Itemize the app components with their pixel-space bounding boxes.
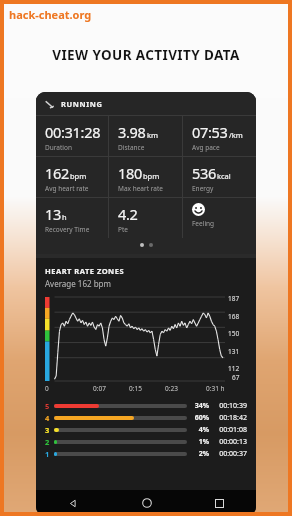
staticText: RUNNING xyxy=(61,99,103,109)
staticText: hack-cheat.org xyxy=(9,7,92,22)
staticText: 2 xyxy=(45,437,54,447)
staticText: 150 xyxy=(228,329,247,338)
button[interactable]: 2 xyxy=(45,436,247,448)
staticText: 4 xyxy=(45,413,54,423)
staticText: 536 xyxy=(192,163,216,183)
staticText: Distance xyxy=(118,143,145,152)
staticText: 00:00:37 xyxy=(213,449,247,459)
button[interactable]: Back xyxy=(36,490,110,516)
staticText: Feeling xyxy=(192,219,215,228)
staticText: 3 xyxy=(45,425,54,435)
staticText: Energy xyxy=(192,184,214,193)
staticText: 5 xyxy=(45,401,54,411)
staticText: 112 xyxy=(228,364,247,373)
staticText: bpm xyxy=(70,171,87,181)
staticText: 00:10:39 xyxy=(213,401,247,411)
staticText: 0:15 xyxy=(129,384,142,393)
staticText: Recovery Time xyxy=(45,225,90,234)
staticText: 1% xyxy=(189,437,209,447)
button[interactable]: Home xyxy=(110,490,183,516)
button[interactable]: 1 xyxy=(45,448,247,460)
staticText: bpm xyxy=(143,171,160,181)
staticText: Average 162 bpm xyxy=(45,278,111,289)
staticText: km xyxy=(147,130,159,140)
staticText: 4% xyxy=(189,425,209,435)
staticText: 0:23 xyxy=(165,384,178,393)
staticText: 67 xyxy=(232,373,240,382)
staticText: Pte xyxy=(118,225,128,234)
staticText: Duration xyxy=(45,143,72,152)
staticText: 34% xyxy=(189,401,209,411)
staticText: 162 xyxy=(45,163,69,183)
staticText: HEART RATE ZONES xyxy=(45,266,125,276)
staticText: /km xyxy=(229,130,243,140)
staticText: 00:31:28 xyxy=(45,122,101,142)
staticText: 00:18:42 xyxy=(213,413,247,423)
staticText: 4.2 xyxy=(118,204,138,224)
staticText: 0:31 h xyxy=(206,384,225,393)
button[interactable]: RUNNING xyxy=(36,92,256,254)
staticText: 0 xyxy=(45,384,49,393)
button[interactable]: 4 xyxy=(45,412,247,424)
staticText: 60% xyxy=(189,413,209,423)
button[interactable]: Feeling xyxy=(192,203,205,216)
staticText: 2% xyxy=(189,449,209,459)
button[interactable]: 5 xyxy=(45,400,247,412)
staticText: 07:53 xyxy=(192,122,228,142)
staticText: kcal xyxy=(217,171,231,181)
staticText: 180 xyxy=(118,163,142,183)
staticText: VIEW YOUR ACTIVITY DATA xyxy=(0,46,292,64)
staticText: 1 xyxy=(45,449,54,459)
staticText: 187 xyxy=(228,294,247,303)
staticText: 131 xyxy=(228,347,247,356)
staticText: 3.98 xyxy=(118,122,146,142)
staticText: Avg heart rate xyxy=(45,184,89,193)
staticText: 0:07 xyxy=(93,384,106,393)
button[interactable]: 3 xyxy=(45,424,247,436)
button[interactable]: Recent apps xyxy=(183,490,256,516)
staticText: 00:01:08 xyxy=(213,425,247,435)
staticText: h xyxy=(62,212,67,222)
button[interactable]: HEART RATE ZONES xyxy=(36,258,256,490)
staticText: 13 xyxy=(45,204,61,224)
staticText: 168 xyxy=(228,312,247,321)
staticText: Avg pace xyxy=(192,143,220,152)
staticText: 00:00:13 xyxy=(213,437,247,447)
staticText: Max heart rate xyxy=(118,184,163,193)
